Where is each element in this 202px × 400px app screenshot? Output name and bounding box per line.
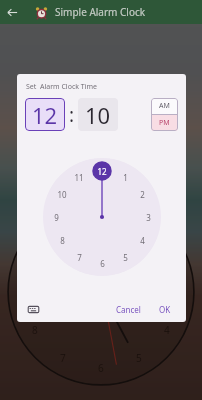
staticText: 7: [60, 351, 66, 365]
button[interactable]: Switch to keyboard input: [25, 301, 41, 317]
staticText: 8: [32, 323, 38, 337]
button[interactable]: 2: [134, 186, 150, 202]
staticText: AM: [159, 101, 170, 111]
button[interactable]: 10: [78, 98, 118, 131]
staticText: OK: [159, 304, 171, 315]
button[interactable]: 9: [48, 209, 64, 225]
staticText: 9: [54, 212, 59, 223]
staticText: 5: [123, 252, 128, 263]
staticText: 7: [77, 252, 82, 263]
button[interactable]: OK: [154, 301, 176, 318]
button[interactable]: Cancel: [111, 301, 146, 318]
staticText: 10: [57, 189, 67, 200]
staticText: 1: [123, 172, 128, 183]
button[interactable]: 3: [140, 209, 156, 225]
button[interactable]: 12: [25, 98, 65, 131]
button[interactable]: 4: [134, 232, 150, 248]
staticText: PM: [159, 118, 170, 128]
button[interactable]: Back: [0, 0, 24, 24]
staticText: 5: [136, 351, 142, 365]
button[interactable]: 6: [94, 255, 110, 271]
button[interactable]: 12: [94, 163, 110, 179]
staticText: 2: [140, 189, 145, 200]
staticText: 12: [97, 166, 107, 177]
staticText: Set Alarm Clock Time: [26, 82, 97, 92]
button[interactable]: AM: [151, 98, 178, 114]
button[interactable]: 8: [54, 232, 70, 248]
button[interactable]: 11: [71, 169, 87, 185]
staticText: :: [69, 102, 75, 128]
staticText: 6: [100, 258, 105, 269]
button[interactable]: 5: [117, 249, 133, 265]
button[interactable]: PM: [151, 115, 178, 131]
staticText: 8: [60, 235, 65, 246]
staticText: 4: [164, 323, 170, 337]
button[interactable]: 7: [71, 249, 87, 265]
button[interactable]: 10: [54, 186, 70, 202]
staticText: Cancel: [116, 304, 141, 315]
staticText: 3: [146, 212, 151, 223]
staticText: Simple Alarm Clock: [55, 5, 146, 19]
staticText: 10: [85, 100, 111, 130]
staticText: 4: [140, 235, 145, 246]
staticText: 6: [98, 361, 104, 375]
staticText: 11: [74, 172, 84, 183]
staticText: 12: [32, 100, 58, 130]
button[interactable]: 1: [117, 169, 133, 185]
